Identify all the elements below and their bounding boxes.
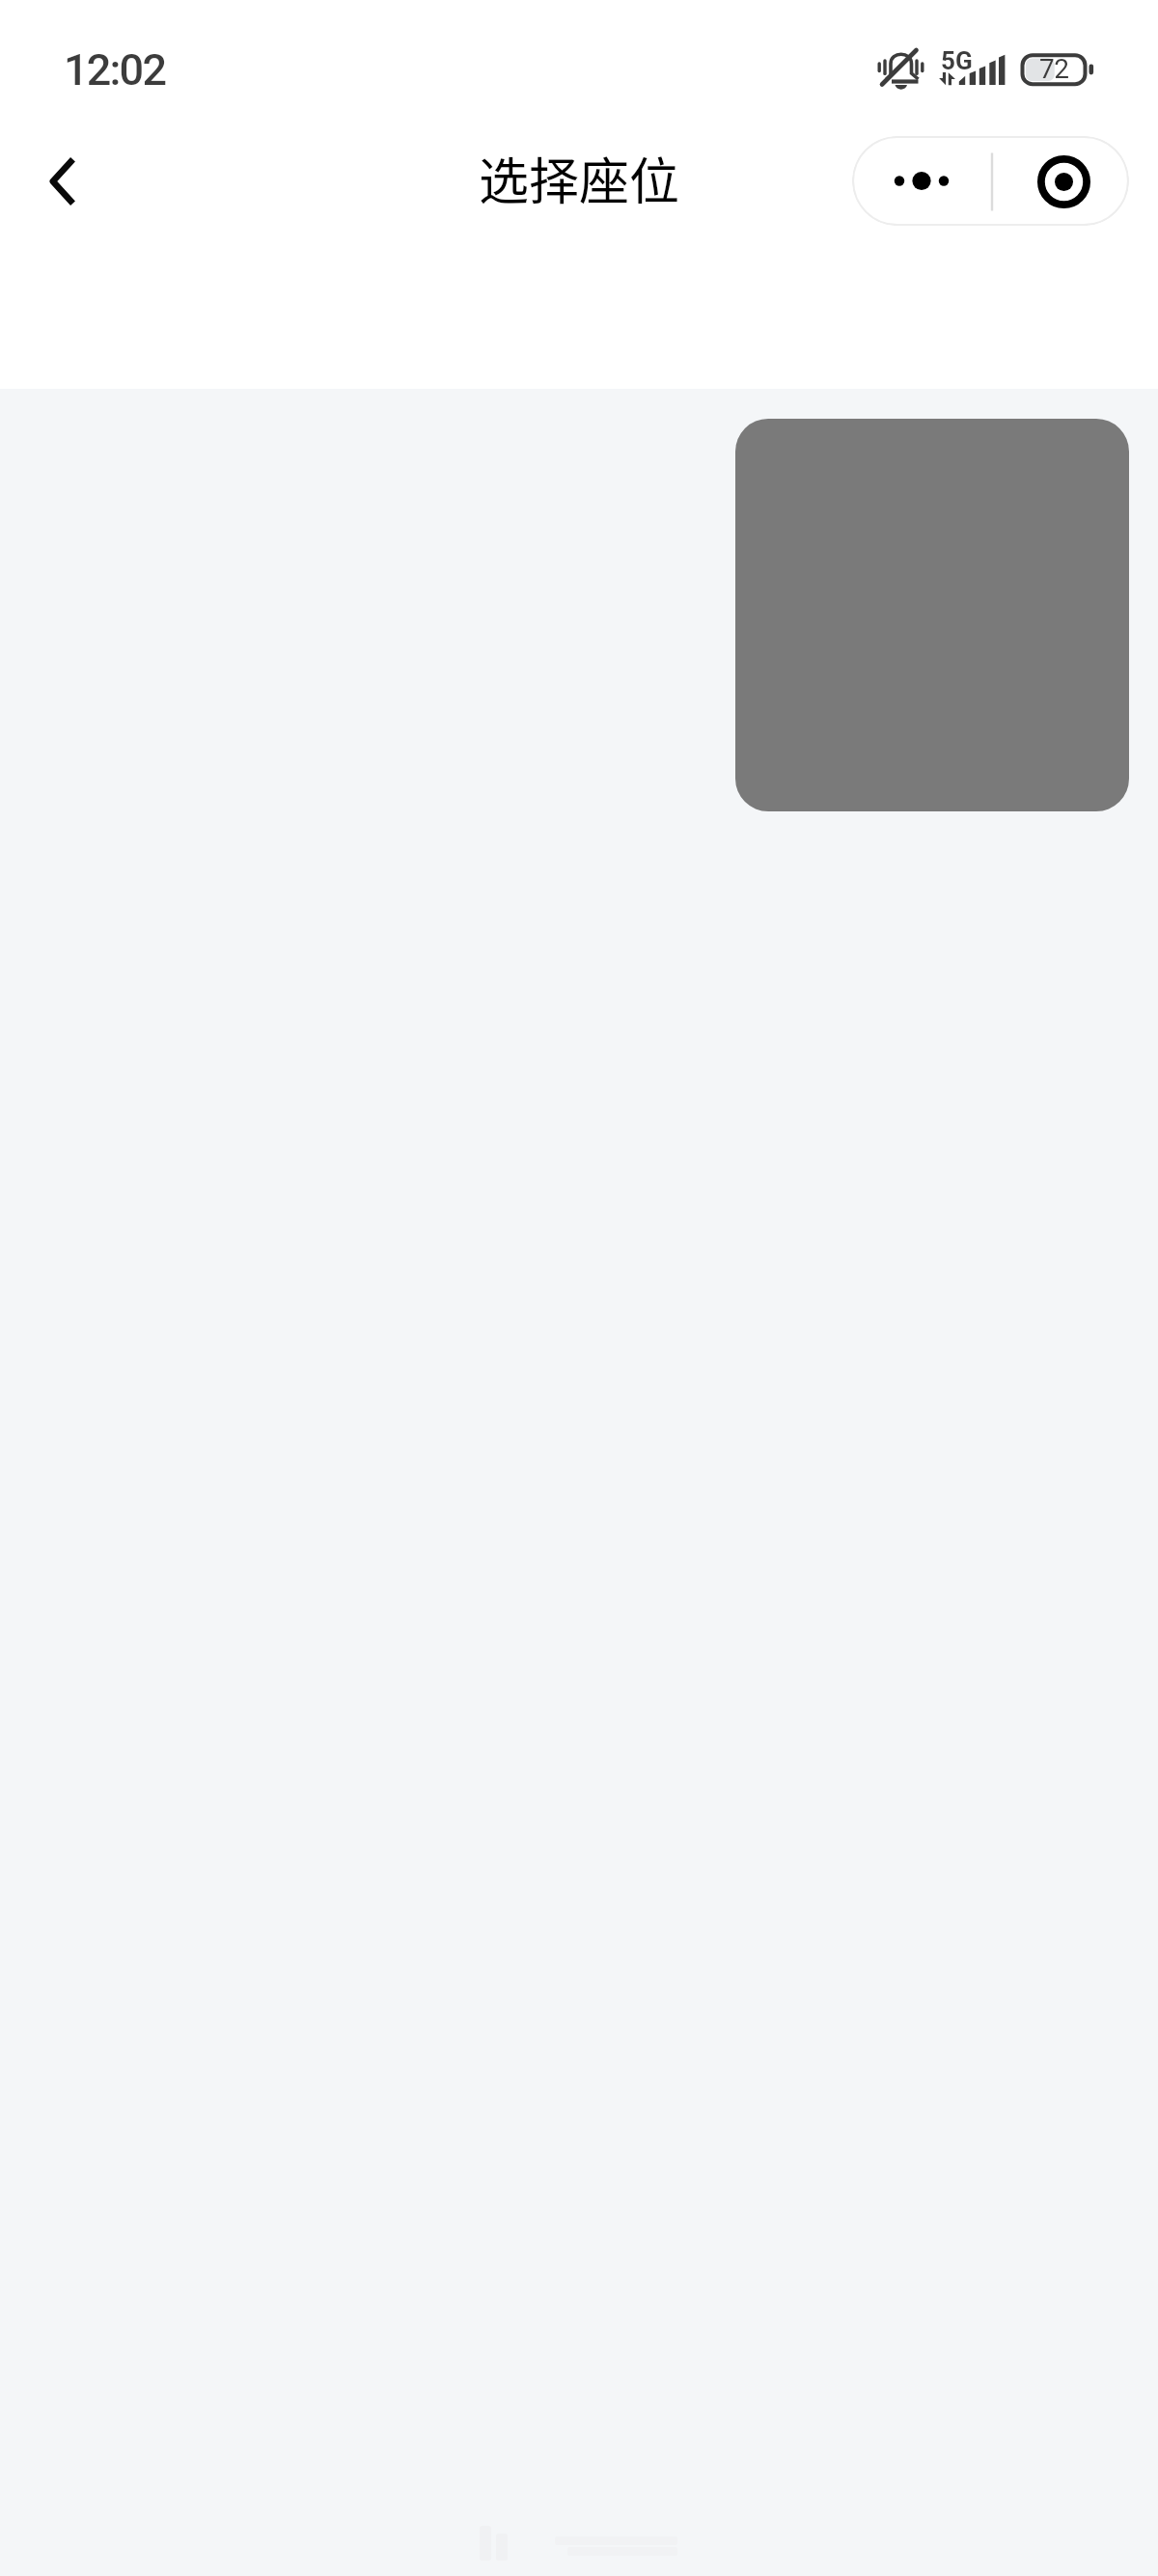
staticText: 5G <box>941 46 973 75</box>
staticText: 选择座位 <box>0 142 1158 214</box>
button[interactable]: More options <box>852 136 992 226</box>
button[interactable]: Close mini program <box>993 136 1129 226</box>
staticText: 12:02 <box>64 44 166 96</box>
button[interactable]: Back <box>17 138 110 223</box>
staticText: 72 <box>1039 53 1069 85</box>
